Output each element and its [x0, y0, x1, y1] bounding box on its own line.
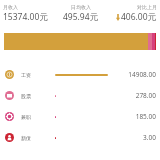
staticText: 对比上月	[137, 4, 157, 10]
button[interactable]: 兼职	[0, 106, 160, 127]
staticText: 3.00	[126, 133, 156, 142]
staticText: 新债	[21, 135, 31, 141]
staticText: 月收入	[3, 4, 18, 10]
staticText: 14908.00	[126, 70, 156, 79]
staticText: 股票	[21, 93, 31, 99]
staticText: 185.00	[126, 112, 156, 121]
staticText: 406.00元	[121, 11, 157, 23]
staticText: 495.94元	[63, 11, 99, 23]
button[interactable]: 股票	[0, 85, 160, 106]
button[interactable]: 新债	[0, 127, 160, 148]
staticText: 工资	[21, 72, 31, 78]
staticText: 278.00	[126, 91, 156, 100]
staticText: 日均收入	[71, 4, 91, 10]
staticText: 兼职	[21, 114, 31, 120]
staticText: 15374.00元	[3, 11, 48, 23]
button[interactable]: 工资	[0, 64, 160, 85]
